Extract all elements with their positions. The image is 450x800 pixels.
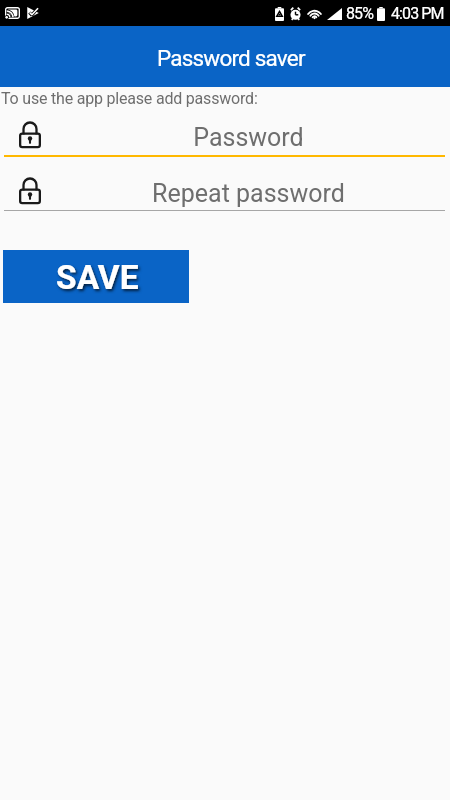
staticText: Password — [193, 123, 304, 152]
staticText: Repeat password — [152, 179, 345, 208]
button[interactable]: Repeat password — [4, 158, 445, 211]
button[interactable]: Password — [4, 108, 445, 157]
staticText: SAVE — [56, 258, 139, 297]
button[interactable]: SAVE — [3, 250, 189, 303]
staticText: 85% — [346, 4, 374, 23]
staticText: 4:03 PM — [391, 4, 444, 23]
staticText: To use the app please add password: — [1, 89, 258, 108]
staticText: Password saver — [157, 45, 305, 71]
